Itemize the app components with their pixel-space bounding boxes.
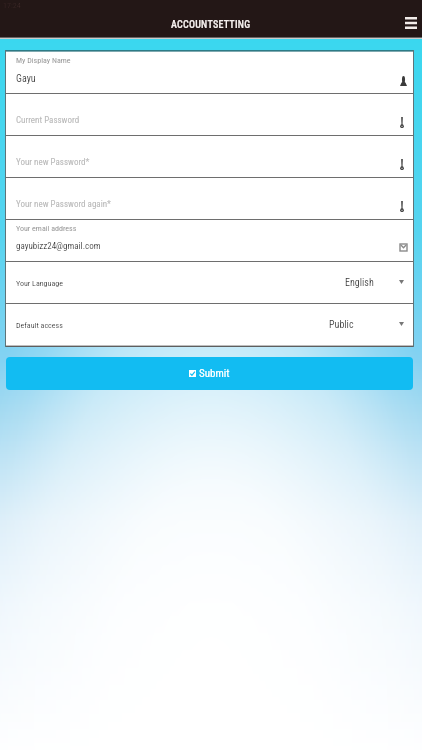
staticText: Your new Password* — [16, 157, 90, 168]
staticText: ACCOUNTSETTING — [171, 19, 251, 31]
staticText: Gayu — [16, 73, 36, 85]
staticText: Submit — [199, 367, 230, 380]
staticText: Your Language — [16, 279, 63, 288]
button[interactable]: Your new Password again* — [5, 178, 414, 220]
button[interactable]: Menu — [399, 11, 422, 35]
staticText: Your new Password again* — [16, 199, 111, 210]
button[interactable]: Current Password — [5, 94, 414, 136]
staticText: 17:24 — [3, 1, 21, 10]
button[interactable]: Submit — [6, 357, 413, 390]
staticText: Default access — [16, 321, 63, 330]
button[interactable]: Your email address — [5, 220, 414, 262]
button[interactable]: Default access — [5, 304, 414, 346]
staticText: Your email address — [16, 224, 77, 233]
staticText: gayubizz24@gmail.com — [16, 241, 101, 252]
button[interactable]: Your new Password* — [5, 136, 414, 178]
staticText: Current Password — [16, 115, 80, 126]
button[interactable]: Your Language — [5, 262, 414, 304]
staticText: Public — [329, 319, 354, 331]
staticText: My Display Name — [16, 56, 71, 65]
staticText: English — [345, 277, 374, 289]
button[interactable]: My Display Name — [5, 52, 414, 94]
